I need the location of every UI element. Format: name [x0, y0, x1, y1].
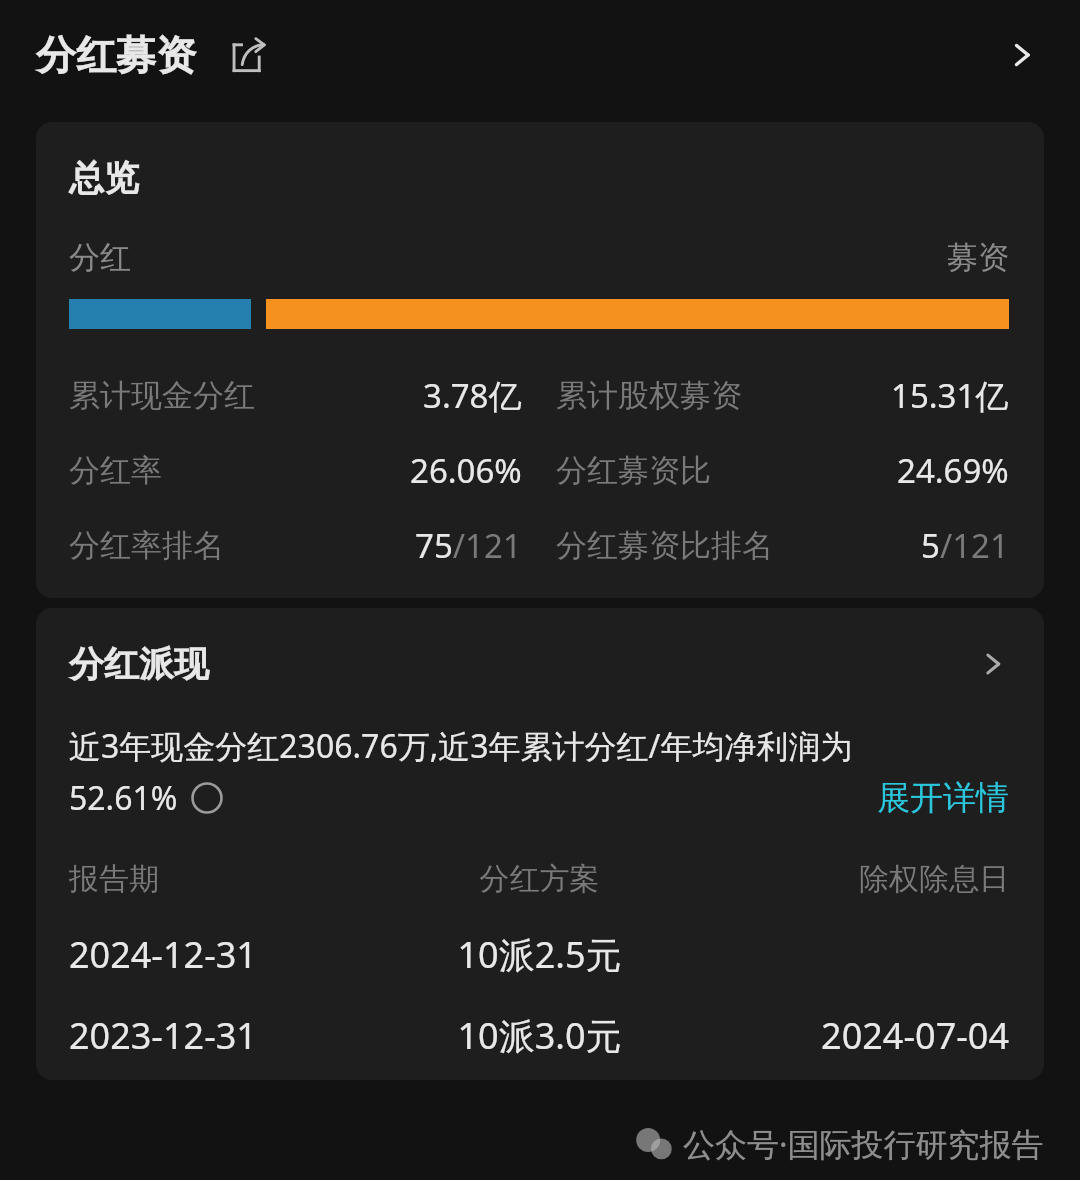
button[interactable]: 2023-12-31 [69, 1011, 1009, 1060]
staticText: 分红方案 [383, 860, 696, 898]
staticText: 近3年现金分红2306.76万,近3年累计分红/年均净利润为 [69, 724, 853, 768]
staticText: 分红派现 [69, 642, 209, 686]
button[interactable]: 2024-12-31 [69, 930, 1009, 979]
button[interactable]: 分红募资 [0, 0, 1080, 110]
staticText: 5/121 [921, 523, 1009, 568]
staticText: 15.31亿 [891, 373, 1009, 418]
button[interactable]: More [994, 27, 1050, 83]
staticText: 26.06% [410, 448, 522, 493]
staticText: 3.78亿 [423, 373, 522, 418]
staticText: 公众号·国际投行研究报告 [683, 1122, 1044, 1166]
button[interactable]: 分红派现 [69, 642, 1009, 686]
staticText: 累计现金分红 [69, 376, 255, 415]
staticText: 2024-07-04 [696, 1011, 1009, 1060]
button[interactable]: 总览 [36, 122, 1044, 598]
staticText: 募资 [947, 238, 1009, 277]
staticText: 除权除息日 [696, 860, 1009, 898]
button[interactable]: Share [226, 32, 272, 78]
staticText: 累计股权募资 [556, 376, 742, 415]
staticText: 10派3.0元 [383, 1011, 696, 1060]
staticText: 52.61% [69, 776, 178, 820]
staticText: 报告期 [69, 860, 383, 898]
button[interactable]: 展开详情 [877, 777, 1009, 819]
staticText: 分红募资 [36, 30, 196, 80]
staticText: 分红募资比排名 [556, 526, 773, 565]
staticText: 分红率 [69, 451, 162, 490]
staticText: 2023-12-31 [69, 1011, 383, 1060]
staticText: 10派2.5元 [383, 930, 696, 979]
staticText: 总览 [69, 156, 139, 200]
staticText: 24.69% [897, 448, 1009, 493]
staticText: 2024-12-31 [69, 930, 383, 979]
staticText: 分红率排名 [69, 526, 224, 565]
staticText: 分红 [69, 238, 131, 277]
staticText: 展开详情 [877, 777, 1009, 819]
staticText: 75/121 [415, 523, 522, 568]
staticText: 分红募资比 [556, 451, 711, 490]
button[interactable]: Help [190, 781, 224, 815]
